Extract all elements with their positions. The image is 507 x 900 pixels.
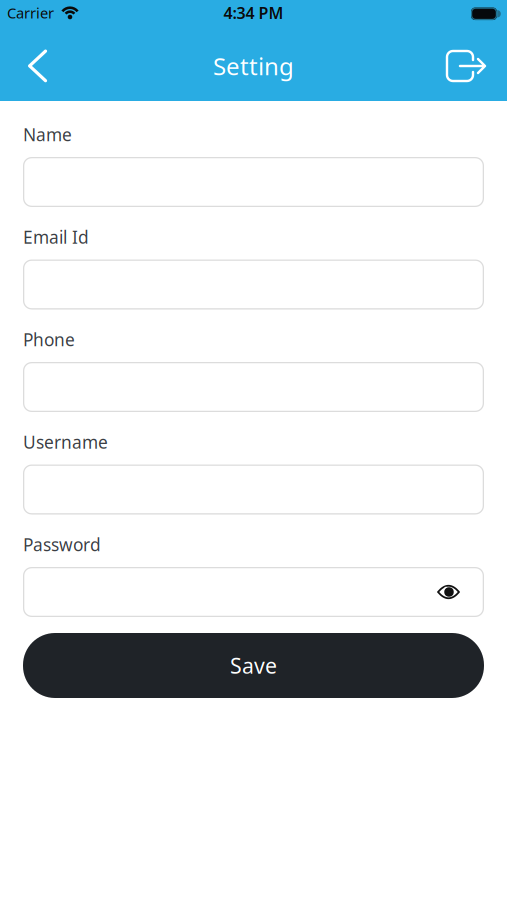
staticText: Username [23,430,108,453]
staticText: Phone [23,328,75,351]
button[interactable]: Log out [447,33,507,99]
staticText: Save [230,651,277,680]
staticText: Password [23,533,101,556]
staticText: Email Id [23,225,89,248]
staticText: 4:34 PM [223,2,283,23]
button[interactable]: Email Id text field [23,259,484,309]
button[interactable]: Show password [438,585,484,599]
button[interactable]: Username text field [23,464,484,514]
button[interactable]: Back [0,33,47,98]
staticText: Name [23,123,72,146]
button[interactable]: Password text field [23,567,484,617]
staticText: Setting [213,50,294,82]
button[interactable]: Save [23,633,484,698]
button[interactable]: Phone text field [23,362,484,412]
button[interactable]: Name text field [23,157,484,207]
staticText: Carrier [7,3,54,23]
